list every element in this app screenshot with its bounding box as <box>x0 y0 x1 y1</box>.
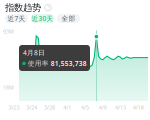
button[interactable]: 全部 <box>57 14 80 23</box>
staticText: 3/23 <box>8 104 19 111</box>
staticText: 4/9 <box>99 104 107 111</box>
button[interactable]: 近7天 <box>5 14 28 23</box>
staticText: 4/18 <box>133 104 144 111</box>
staticText: 近30天 <box>31 14 53 23</box>
staticText: 4/5 <box>81 104 89 111</box>
staticText: 3/28 <box>44 104 55 111</box>
staticText: 18M <box>3 84 14 91</box>
staticText: 3/24 <box>26 104 37 111</box>
staticText: 全部 <box>61 14 75 23</box>
staticText: 使用率 <box>28 59 49 67</box>
button[interactable]: 说明 <box>44 4 52 12</box>
staticText: 93M <box>3 28 14 35</box>
staticText: ? <box>47 4 49 11</box>
staticText: 81,553,738 <box>51 59 87 68</box>
staticText: 4月8日 <box>23 48 45 57</box>
staticText: 近7天 <box>7 14 25 23</box>
button[interactable]: 近30天 <box>31 14 54 23</box>
staticText: 4/13 <box>115 104 126 111</box>
staticText: 指数趋势 <box>5 2 41 13</box>
staticText: 4/1 <box>63 104 71 111</box>
